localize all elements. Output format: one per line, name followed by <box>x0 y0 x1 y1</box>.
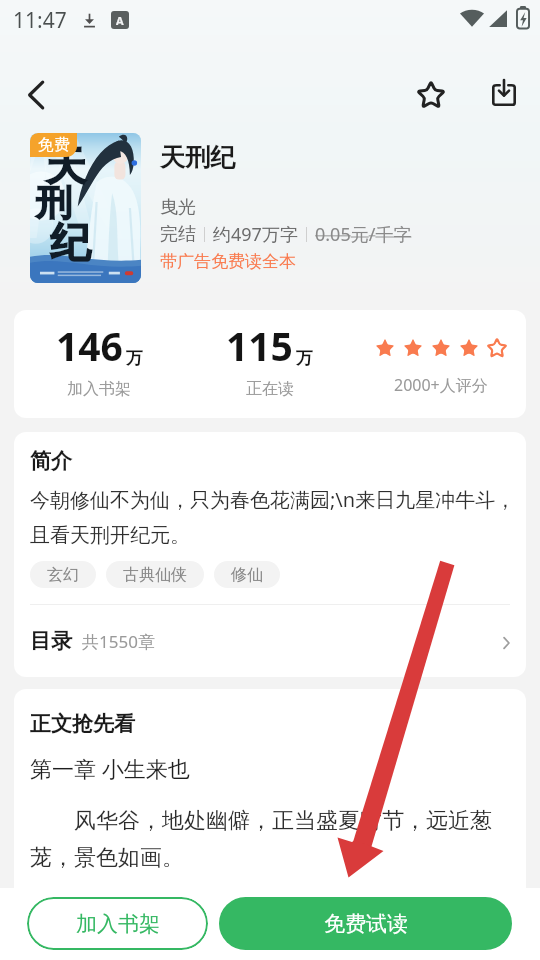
staticText: 万 <box>296 348 313 369</box>
staticText: 目录 <box>30 628 72 654</box>
staticText: 共1550章 <box>82 630 155 653</box>
staticText: 古典仙侠 <box>123 565 187 585</box>
staticText: 曳光 <box>160 196 196 219</box>
button[interactable]: Back <box>12 71 60 119</box>
button[interactable]: 玄幻 <box>30 561 96 588</box>
staticText: A <box>116 13 124 28</box>
staticText: 正文抢先看 <box>30 711 135 737</box>
staticText: 万 <box>126 348 143 369</box>
staticText: 加入书架 <box>76 911 160 937</box>
button[interactable]: 加入书架 <box>27 897 208 950</box>
staticText: 2000+人评分 <box>394 374 488 396</box>
staticText: 11:47 <box>13 6 67 35</box>
staticText: 115 <box>226 319 293 372</box>
staticText: 约497万字 <box>213 222 298 247</box>
button[interactable]: 修仙 <box>214 561 280 588</box>
staticText: 正在读 <box>246 379 294 399</box>
button[interactable]: 古典仙侠 <box>106 561 204 588</box>
staticText: 天刑纪 <box>160 142 235 173</box>
staticText: 天 <box>46 141 86 191</box>
staticText: 加入书架 <box>67 379 131 399</box>
staticText: 0.05元/千字 <box>315 222 412 247</box>
staticText: 简介 <box>30 448 72 474</box>
staticText: 纪 <box>50 217 90 267</box>
staticText: 带广告免费读全本 <box>160 251 296 272</box>
button[interactable]: 免费试读 <box>219 897 512 950</box>
staticText: 玄幻 <box>47 565 79 585</box>
button[interactable]: Favorite <box>407 71 455 119</box>
button[interactable]: Download <box>480 71 528 119</box>
staticText: 今朝修仙不为仙，只为春色花满园;\n来日九星冲牛斗，且看天刑开纪元。 <box>30 486 516 548</box>
button[interactable]: Book cover <box>30 133 141 283</box>
button[interactable]: 目录 <box>14 605 526 677</box>
staticText: 免费试读 <box>324 911 408 937</box>
staticText: 第一章 小生来也 <box>30 753 190 783</box>
staticText: 146 <box>56 319 123 372</box>
staticText: 免费 <box>38 135 70 155</box>
staticText: 刑 <box>36 180 72 225</box>
staticText: 风华谷，地处幽僻，正当盛夏时节，远近葱茏，景色如画。 <box>30 804 518 872</box>
staticText: 完结 <box>160 223 196 246</box>
staticText: 修仙 <box>231 565 263 585</box>
